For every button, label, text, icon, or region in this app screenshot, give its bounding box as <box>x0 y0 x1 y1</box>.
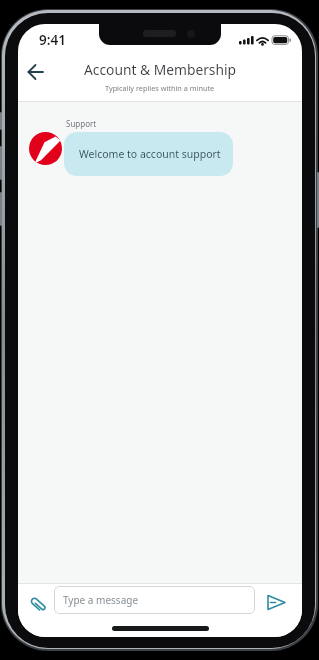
button[interactable] <box>263 590 289 614</box>
staticText: Typically replies within a minute <box>105 83 215 93</box>
button[interactable]: Welcome to account support <box>64 132 233 176</box>
button[interactable] <box>26 592 50 616</box>
staticText: Support <box>66 118 97 129</box>
button[interactable] <box>20 57 50 87</box>
staticText: Welcome to account support <box>79 147 221 161</box>
staticText: Type a message <box>63 593 139 607</box>
staticText: Account & Membership <box>84 60 237 79</box>
staticText: 9:41 <box>39 31 66 49</box>
button[interactable]: Type a message <box>54 586 255 614</box>
